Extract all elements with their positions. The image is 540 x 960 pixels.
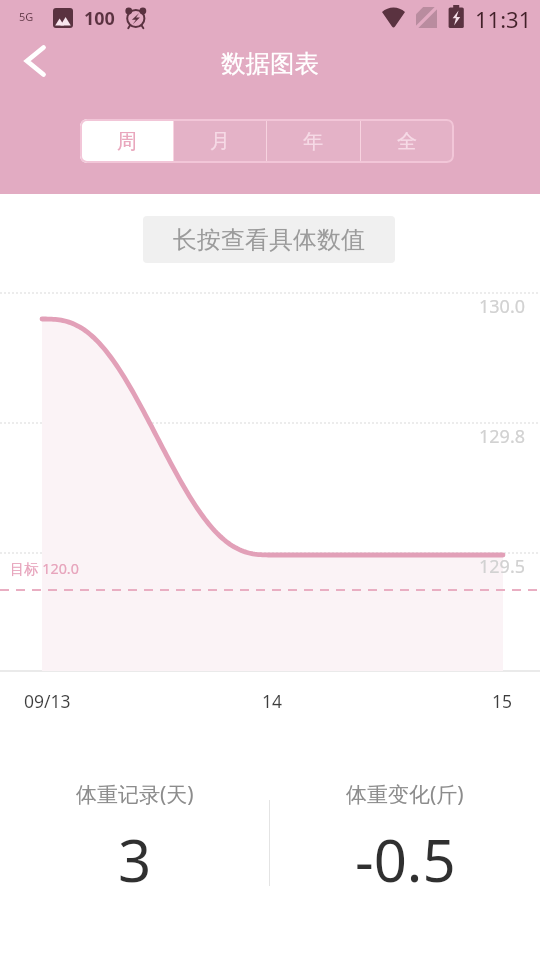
staticText: 年 (303, 129, 323, 154)
button[interactable]: 全 (360, 119, 454, 163)
staticText: 周 (117, 129, 137, 154)
button[interactable]: 周 (80, 119, 173, 163)
button[interactable]: 长按查看具体数值 (143, 216, 395, 263)
staticText: 全 (397, 129, 417, 154)
staticText: 体重记录(天) (76, 780, 194, 809)
staticText: 130.0 (479, 294, 526, 319)
staticText: 长按查看具体数值 (173, 225, 365, 255)
staticText: 体重变化(斤) (346, 780, 464, 809)
staticText: 数据图表 (221, 48, 319, 79)
staticText: 09/13 (24, 689, 71, 713)
staticText: 3 (118, 820, 152, 899)
button[interactable]: Back (4, 32, 62, 90)
staticText: 129.5 (479, 554, 526, 579)
staticText: 100 (84, 6, 115, 31)
staticText: 15 (492, 689, 513, 713)
staticText: 目标 120.0 (10, 559, 79, 579)
button[interactable]: 年 (266, 119, 360, 163)
staticText: 11:31 (475, 4, 532, 34)
staticText: 月 (210, 129, 230, 154)
staticText: -0.5 (355, 820, 456, 899)
button[interactable]: 月 (173, 119, 266, 163)
staticText: 129.8 (479, 424, 526, 449)
staticText: 5G (19, 9, 34, 24)
staticText: 14 (262, 689, 283, 713)
